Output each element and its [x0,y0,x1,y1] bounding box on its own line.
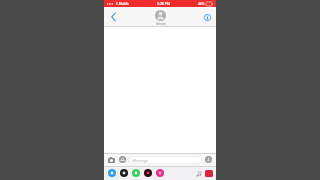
button[interactable]: iMessage [129,156,202,164]
button[interactable]: Music app [143,168,153,178]
button[interactable]: Back [106,10,120,24]
button[interactable]: Details [200,10,214,24]
button[interactable]: Record audio [204,155,213,164]
button[interactable]: Recording app [205,170,213,177]
staticText: 48% [198,2,205,6]
button[interactable]: Kristin [155,9,166,26]
button[interactable]: Messages app [131,168,141,178]
button[interactable]: Apps [118,155,127,164]
button[interactable]: Photos app [119,168,129,178]
staticText: Kristin [156,22,166,26]
staticText: iMessage [132,158,148,163]
button[interactable]: Camera [107,155,116,164]
staticText: T-Mobile [116,2,130,6]
button[interactable]: Music [194,169,203,178]
button[interactable]: Sticker app [155,168,165,178]
staticText: 5:28 PM [157,1,170,6]
button[interactable]: App Store [107,168,117,178]
